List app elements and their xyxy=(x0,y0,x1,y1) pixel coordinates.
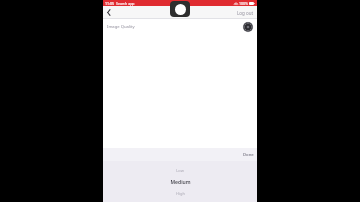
staticText: Search app xyxy=(116,1,135,6)
button[interactable]: Image Quality xyxy=(103,19,257,34)
other: Quality setting xyxy=(243,22,253,32)
button[interactable]: Done xyxy=(240,148,257,161)
staticText: 100% xyxy=(239,1,248,6)
staticText: Log out xyxy=(237,10,254,16)
button[interactable]: Medium xyxy=(103,176,257,188)
staticText: Done xyxy=(243,152,254,158)
button[interactable]: Back xyxy=(103,6,115,19)
other: Recording indicator xyxy=(170,1,190,17)
staticText: 11:05 xyxy=(105,1,114,6)
button[interactable]: Log out xyxy=(234,6,257,19)
staticText: High xyxy=(176,191,185,196)
staticText: Image Quality xyxy=(107,24,135,30)
staticText: Medium xyxy=(170,179,191,186)
staticText: Low xyxy=(176,168,184,173)
